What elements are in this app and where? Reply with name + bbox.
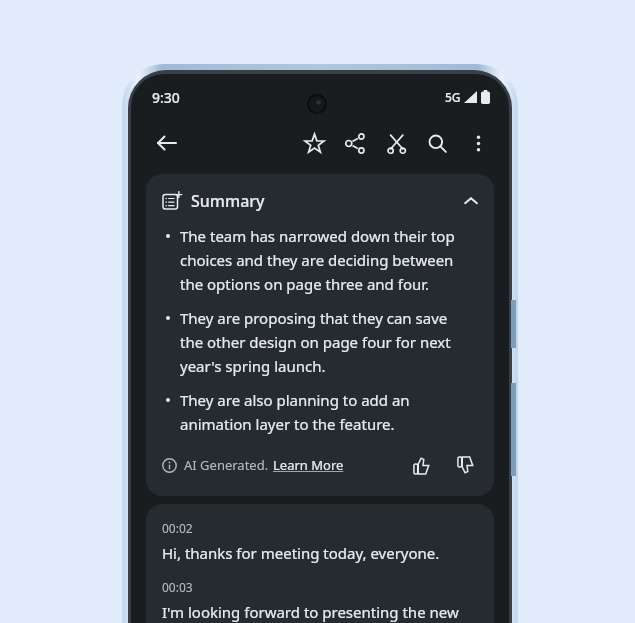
button[interactable]: More options — [458, 123, 499, 164]
staticText: They are proposing that they can save th… — [180, 308, 474, 376]
staticText: The team has narrowed down their top cho… — [180, 226, 474, 294]
button[interactable]: 00:02 — [146, 504, 494, 623]
staticText: Learn More — [273, 456, 344, 474]
other: Collapse — [462, 192, 480, 210]
staticText: Hi, thanks for meeting today, everyone. — [162, 543, 440, 563]
staticText: 00:02 — [162, 520, 193, 536]
button[interactable]: Thumbs down — [450, 450, 480, 480]
staticText: I'm looking forward to presenting the ne… — [162, 602, 482, 623]
staticText: 00:03 — [162, 579, 193, 595]
button[interactable]: Trim — [376, 123, 417, 164]
staticText: They are also planning to add an animati… — [180, 390, 474, 434]
staticText: Summary — [191, 190, 265, 212]
staticText: 5G — [445, 89, 461, 105]
button[interactable]: Search — [417, 123, 458, 164]
button[interactable]: Summary — [146, 174, 494, 218]
button[interactable]: Thumbs up — [406, 450, 436, 480]
button[interactable]: Star — [294, 123, 335, 164]
button[interactable]: Learn More — [273, 456, 344, 474]
button[interactable]: Back — [147, 123, 187, 163]
button[interactable]: Share — [335, 123, 376, 164]
staticText: AI Generated. — [184, 456, 269, 474]
staticText: 9:30 — [152, 88, 180, 107]
